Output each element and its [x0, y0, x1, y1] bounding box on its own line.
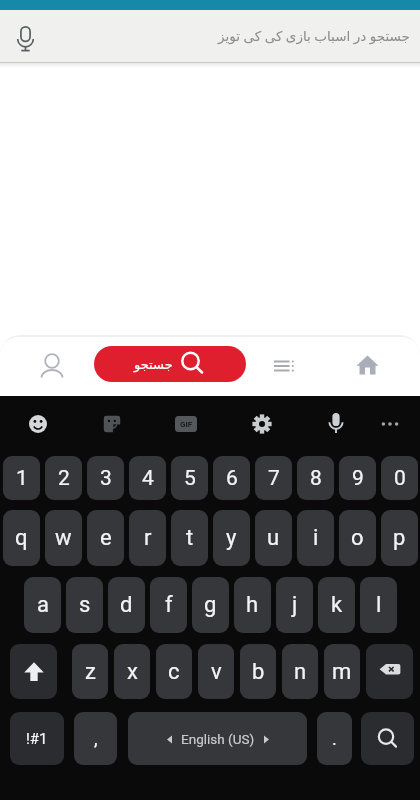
button[interactable]: جستجو [94, 346, 246, 382]
staticText: g [204, 592, 217, 618]
button[interactable]: i [297, 510, 334, 566]
staticText: 7 [268, 466, 280, 491]
staticText: !#1 [26, 730, 48, 748]
button[interactable]: a [24, 577, 61, 633]
staticText: 1 [16, 466, 28, 491]
button[interactable]: f [150, 577, 187, 633]
button[interactable]: 4 [129, 456, 166, 500]
button[interactable]: 6 [213, 456, 250, 500]
staticText: o [351, 525, 364, 551]
button[interactable]: r [129, 510, 166, 566]
staticText: d [120, 592, 133, 618]
staticText: j [292, 592, 298, 618]
button[interactable] [14, 26, 38, 53]
button[interactable]: j [276, 577, 313, 633]
staticText: w [55, 525, 72, 551]
staticText: . [332, 728, 337, 749]
staticText: q [15, 525, 28, 551]
staticText: t [186, 525, 194, 551]
button[interactable]: o [339, 510, 376, 566]
staticText: x [127, 659, 138, 685]
button[interactable]: p [381, 510, 418, 566]
button[interactable] [366, 644, 413, 699]
button[interactable]: . [317, 712, 352, 765]
staticText: l [376, 592, 382, 618]
staticText: 9 [352, 466, 364, 491]
button[interactable] [250, 412, 274, 436]
staticText: z [85, 659, 96, 685]
button[interactable]: t [171, 510, 208, 566]
button[interactable]: n [282, 644, 318, 699]
staticText: y [226, 525, 237, 551]
staticText: s [79, 592, 91, 618]
button[interactable]: 7 [255, 456, 292, 500]
staticText: جستجو [134, 357, 173, 372]
staticText: f [165, 592, 173, 618]
button[interactable]: b [240, 644, 276, 699]
button[interactable]: English (US) [128, 712, 307, 765]
button[interactable]: c [156, 644, 192, 699]
button[interactable]: z [72, 644, 108, 699]
button[interactable]: جستجو در اسباب بازی کی کی تویز [0, 10, 420, 62]
staticText: n [294, 659, 307, 685]
button[interactable] [26, 412, 50, 436]
staticText: p [393, 525, 406, 551]
button[interactable] [361, 712, 414, 765]
staticText: 6 [226, 466, 238, 491]
button[interactable]: GIF [175, 416, 197, 432]
button[interactable]: !#1 [10, 712, 64, 765]
button[interactable] [39, 350, 65, 382]
button[interactable] [272, 355, 296, 377]
button[interactable] [324, 410, 348, 438]
staticText: r [144, 525, 152, 551]
button[interactable]: x [114, 644, 150, 699]
staticText: English (US) [181, 731, 255, 747]
button[interactable]: v [198, 644, 234, 699]
staticText: c [168, 659, 180, 685]
staticText: GIF [180, 420, 193, 429]
staticText: جستجو در اسباب بازی کی کی تویز [218, 27, 410, 45]
button[interactable]: 2 [45, 456, 82, 500]
button[interactable] [100, 412, 124, 436]
staticText: 4 [142, 466, 154, 491]
staticText: 0 [394, 466, 406, 491]
staticText: 3 [100, 466, 112, 491]
staticText: 5 [184, 466, 196, 491]
staticText: e [100, 525, 112, 551]
staticText: h [246, 592, 259, 618]
button[interactable]: h [234, 577, 271, 633]
staticText: m [332, 659, 352, 685]
button[interactable]: 9 [339, 456, 376, 500]
button[interactable]: u [255, 510, 292, 566]
button[interactable]: w [45, 510, 82, 566]
button[interactable]: m [324, 644, 360, 699]
button[interactable]: l [360, 577, 397, 633]
staticText: k [331, 592, 343, 618]
staticText: v [211, 659, 222, 685]
button[interactable] [378, 414, 402, 434]
button[interactable]: q [3, 510, 40, 566]
staticText: 8 [310, 466, 322, 491]
button[interactable]: 0 [381, 456, 418, 500]
staticText: , [94, 728, 98, 749]
staticText: 2 [58, 466, 70, 491]
button[interactable]: , [74, 712, 117, 765]
button[interactable]: 3 [87, 456, 124, 500]
button[interactable]: k [318, 577, 355, 633]
button[interactable]: 1 [3, 456, 40, 500]
button[interactable]: 5 [171, 456, 208, 500]
staticText: i [313, 525, 319, 551]
staticText: a [37, 592, 49, 618]
staticText: b [252, 659, 265, 685]
button[interactable]: e [87, 510, 124, 566]
button[interactable]: d [108, 577, 145, 633]
button[interactable] [10, 644, 57, 699]
staticText: u [267, 525, 280, 551]
button[interactable]: y [213, 510, 250, 566]
button[interactable]: 8 [297, 456, 334, 500]
button[interactable]: s [66, 577, 103, 633]
button[interactable] [356, 354, 379, 376]
button[interactable]: g [192, 577, 229, 633]
